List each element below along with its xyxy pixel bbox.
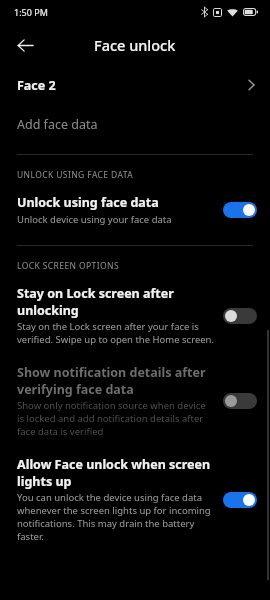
staticText: Face unlock	[94, 35, 176, 55]
staticText: Stay on Lock screen after unlocking	[17, 285, 215, 318]
staticText: Show only notification source when devic…	[17, 399, 215, 438]
button[interactable]: Allow Face unlock when screen lights up	[0, 447, 270, 552]
button[interactable]: Stay on Lock screen after unlocking	[0, 276, 270, 355]
button[interactable]: Off	[223, 308, 257, 324]
staticText: You can unlock the device using face dat…	[17, 491, 215, 543]
button[interactable]: On	[223, 202, 257, 218]
button[interactable]: Unlock using face data	[0, 185, 270, 235]
button[interactable]: Show notification details after verifyin…	[0, 355, 270, 447]
staticText: Allow Face unlock when screen lights up	[17, 456, 215, 489]
staticText: Stay on the Lock screen after your face …	[17, 320, 215, 346]
button[interactable]: On	[223, 492, 257, 508]
staticText: Add face data	[17, 116, 98, 133]
staticText: Unlock using face data	[17, 194, 159, 211]
button[interactable]: Off	[223, 393, 257, 409]
staticText: LOCK SCREEN OPTIONS	[17, 260, 119, 272]
staticText: UNLOCK USING FACE DATA	[17, 169, 134, 181]
button[interactable]: Add face data	[0, 104, 270, 144]
button[interactable]: Back	[8, 28, 42, 62]
staticText: Unlock device using your face data	[17, 213, 172, 226]
staticText: 1:50 PM	[14, 6, 48, 18]
staticText: Show notification details after verifyin…	[17, 364, 215, 397]
button[interactable]: Face 2	[0, 66, 270, 104]
staticText: Face 2	[17, 77, 56, 94]
